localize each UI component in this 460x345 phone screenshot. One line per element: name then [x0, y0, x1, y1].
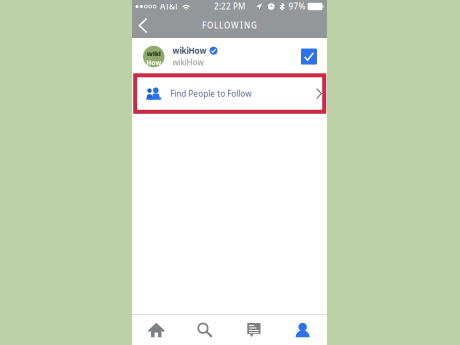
button[interactable]: Articles — [229, 315, 278, 345]
staticText: wikiHow — [172, 45, 206, 56]
staticText: Find People to Follow — [170, 88, 251, 99]
staticText: FOLLOWING — [202, 20, 257, 31]
button[interactable]: Home — [132, 315, 181, 345]
staticText: AT&T — [160, 1, 178, 12]
button[interactable]: Find People to Follow — [132, 76, 327, 112]
staticText: 97% — [288, 1, 305, 12]
staticText: How — [146, 58, 161, 67]
button[interactable]: Profile — [278, 315, 327, 345]
button[interactable]: Following wikiHow — [298, 45, 320, 67]
staticText: wikiHow — [172, 57, 203, 68]
staticText: wiki — [147, 49, 161, 58]
button[interactable]: Search — [181, 315, 230, 345]
staticText: 2:22 PM — [214, 1, 245, 12]
button[interactable]: Back — [132, 13, 154, 38]
